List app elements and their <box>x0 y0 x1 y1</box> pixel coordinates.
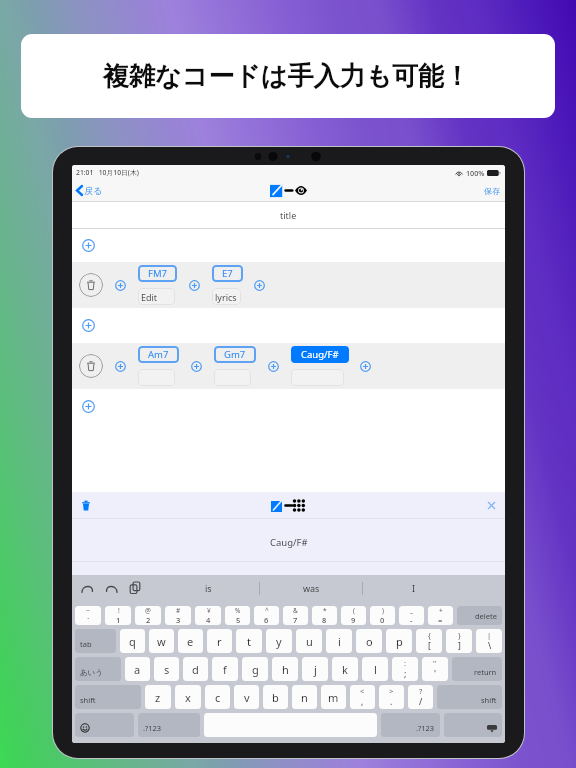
button[interactable]: is <box>157 575 259 601</box>
button[interactable]: Edit / preview <box>270 184 308 197</box>
button[interactable]: w <box>149 629 174 653</box>
button[interactable]: ? <box>408 685 433 709</box>
button[interactable]: Paste <box>129 582 141 594</box>
button[interactable]: Edit <box>138 288 175 305</box>
button[interactable]: FM7 <box>138 265 177 282</box>
button[interactable]: あいう <box>75 657 121 681</box>
button[interactable]: Am7 <box>138 346 179 363</box>
button[interactable]: Gm7 <box>214 346 256 363</box>
button[interactable]: q <box>120 629 145 653</box>
button[interactable]: Delete chord <box>82 500 90 511</box>
button[interactable]: { <box>416 629 442 653</box>
button[interactable]: return <box>452 657 502 681</box>
staticText: c <box>215 690 221 705</box>
button[interactable]: shift <box>75 685 141 709</box>
button[interactable] <box>214 369 251 386</box>
staticText: # <box>176 606 181 615</box>
button[interactable]: | <box>476 629 502 653</box>
button[interactable]: tab <box>75 629 116 653</box>
button[interactable]: Add line <box>82 400 95 413</box>
staticText: 0 <box>380 615 385 625</box>
button[interactable]: < <box>350 685 375 709</box>
button[interactable]: ¥ <box>195 606 221 625</box>
button[interactable]: } <box>446 629 472 653</box>
button[interactable]: e <box>178 629 203 653</box>
button[interactable]: s <box>154 657 179 681</box>
button[interactable]: o <box>356 629 382 653</box>
button[interactable]: m <box>321 685 346 709</box>
button[interactable]: ) <box>370 606 395 625</box>
staticText: shift <box>80 695 96 705</box>
button[interactable]: x <box>175 685 201 709</box>
button[interactable] <box>138 369 175 386</box>
button[interactable]: + <box>428 606 453 625</box>
button[interactable]: .?123 <box>381 713 440 737</box>
button[interactable]: delete <box>457 606 502 625</box>
button[interactable]: Redo <box>105 582 118 595</box>
button[interactable]: : <box>392 657 418 681</box>
button[interactable]: _ <box>399 606 424 625</box>
button[interactable]: shift <box>437 685 502 709</box>
button[interactable]: r <box>207 629 232 653</box>
button[interactable]: Insert chord <box>254 280 265 291</box>
button[interactable]: I <box>363 575 465 601</box>
button[interactable]: ! <box>105 606 131 625</box>
button[interactable]: Keyboard option <box>444 713 502 737</box>
button[interactable]: Add line <box>82 239 95 252</box>
button[interactable]: v <box>234 685 259 709</box>
button[interactable]: > <box>379 685 404 709</box>
button[interactable]: u <box>296 629 322 653</box>
button[interactable]: h <box>272 657 298 681</box>
button[interactable]: @ <box>135 606 161 625</box>
button[interactable]: i <box>326 629 352 653</box>
button[interactable]: ( <box>341 606 366 625</box>
button[interactable]: % <box>225 606 250 625</box>
button[interactable]: l <box>362 657 388 681</box>
button[interactable]: d <box>183 657 208 681</box>
button[interactable]: Insert chord <box>115 361 126 372</box>
button[interactable]: g <box>242 657 268 681</box>
staticText: 21:01 10月10日(木) <box>76 168 139 177</box>
button[interactable]: k <box>332 657 358 681</box>
button[interactable]: # <box>165 606 191 625</box>
button[interactable]: z <box>145 685 171 709</box>
button[interactable]: t <box>236 629 262 653</box>
staticText: i <box>338 634 341 649</box>
button[interactable]: Insert chord <box>189 280 200 291</box>
button[interactable]: Close <box>488 502 495 509</box>
button[interactable]: p <box>386 629 412 653</box>
button[interactable]: * <box>312 606 337 625</box>
button[interactable]: n <box>292 685 317 709</box>
button[interactable]: Insert chord <box>115 280 126 291</box>
button[interactable]: Undo <box>81 582 94 595</box>
button[interactable]: Insert chord <box>360 361 371 372</box>
button[interactable]: Caug/F# <box>291 346 349 363</box>
button[interactable]: ^ <box>254 606 279 625</box>
button[interactable]: 戻る <box>76 185 103 196</box>
button[interactable]: Delete row <box>79 273 103 297</box>
button[interactable]: 保存 <box>484 186 500 196</box>
button[interactable] <box>271 499 307 512</box>
button[interactable]: j <box>302 657 328 681</box>
button[interactable]: was <box>260 575 362 601</box>
button[interactable]: Keyboard option <box>75 713 134 737</box>
button[interactable]: b <box>263 685 288 709</box>
button[interactable]: f <box>212 657 238 681</box>
button[interactable]: c <box>205 685 230 709</box>
button[interactable]: ~ <box>75 606 101 625</box>
button[interactable]: E7 <box>212 265 243 282</box>
button[interactable]: " <box>422 657 448 681</box>
button[interactable] <box>291 369 344 386</box>
button[interactable]: Add line <box>82 319 95 332</box>
button[interactable]: Insert chord <box>268 361 279 372</box>
button[interactable]: Insert chord <box>191 361 202 372</box>
staticText: h <box>282 662 289 677</box>
button[interactable]: lyrics <box>212 288 241 305</box>
button[interactable]: .?123 <box>138 713 200 737</box>
button[interactable]: a <box>125 657 150 681</box>
button[interactable]: Delete row <box>79 354 103 378</box>
button[interactable]: & <box>283 606 308 625</box>
staticText: % <box>235 606 241 615</box>
button[interactable]: y <box>266 629 292 653</box>
